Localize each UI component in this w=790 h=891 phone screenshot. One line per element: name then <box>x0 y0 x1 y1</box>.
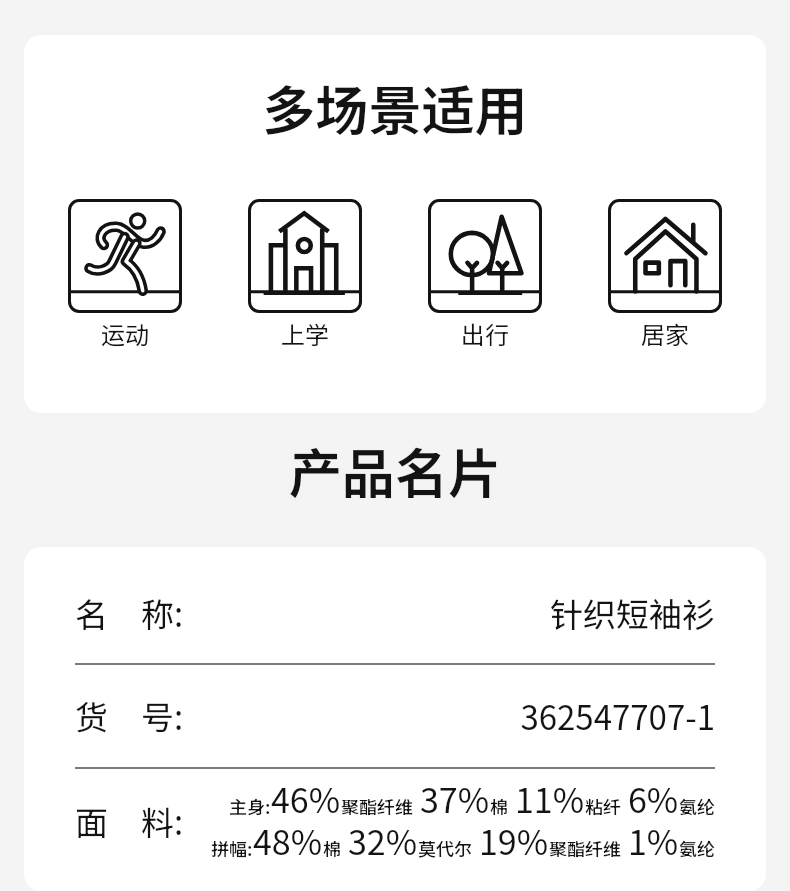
staticText: 37% <box>420 774 490 816</box>
staticText: 46% <box>271 774 341 816</box>
button[interactable]: 上学 <box>248 199 362 313</box>
button[interactable]: 居家 <box>608 199 722 313</box>
button[interactable]: 运动 <box>68 199 182 313</box>
staticText: 19% <box>479 816 549 858</box>
staticText: 名 称: <box>75 589 184 637</box>
staticText: 居家 <box>641 316 689 351</box>
staticText: 11% <box>515 774 585 816</box>
staticText: 主身: <box>229 793 271 819</box>
staticText: 48% <box>253 816 323 858</box>
staticText: 聚酯纤维 <box>549 835 621 861</box>
staticText: 粘纤 <box>585 793 621 819</box>
staticText: 棉 <box>323 835 341 861</box>
staticText: 产品名片 <box>0 432 790 509</box>
staticText: 362547707-1 <box>184 692 715 740</box>
staticText: 出行 <box>461 316 509 351</box>
staticText: 棉 <box>490 793 508 819</box>
staticText: 1% <box>628 816 679 858</box>
button[interactable]: 出行 <box>428 199 542 313</box>
staticText: 针织短袖衫 <box>184 589 715 637</box>
staticText: 上学 <box>281 316 329 351</box>
staticText: 莫代尔 <box>418 835 472 861</box>
staticText: 运动 <box>101 316 149 351</box>
staticText: 聚酯纤维 <box>341 793 413 819</box>
staticText: 氨纶 <box>679 793 715 819</box>
staticText: 拼幅: <box>211 835 253 861</box>
staticText: 面 料: <box>75 797 184 845</box>
staticText: 氨纶 <box>679 835 715 861</box>
staticText: 货 号: <box>75 692 184 740</box>
staticText: 6% <box>628 774 679 816</box>
staticText: 32% <box>348 816 418 858</box>
staticText: 多场景适用 <box>24 69 766 146</box>
